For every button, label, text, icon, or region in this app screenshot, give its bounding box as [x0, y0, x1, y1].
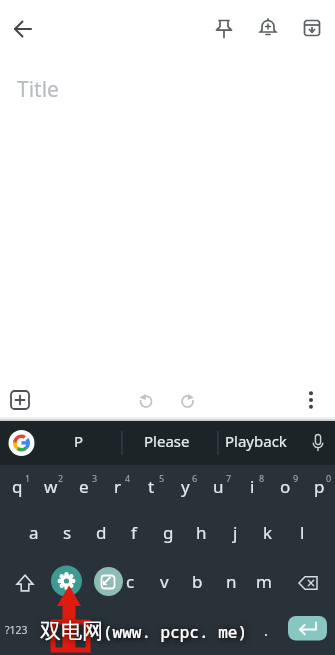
button[interactable]: k — [251, 508, 285, 556]
button[interactable]: e — [67, 462, 101, 510]
button[interactable]: 5 — [145, 471, 179, 485]
button[interactable]: 3 — [78, 471, 112, 485]
button[interactable] — [254, 14, 282, 42]
staticText: ?123 — [5, 623, 28, 637]
button[interactable]: v — [147, 557, 181, 605]
button[interactable]: 8 — [245, 471, 279, 485]
button[interactable]: Please — [132, 425, 202, 457]
staticText: 3 — [92, 472, 98, 484]
button[interactable] — [298, 14, 326, 42]
staticText: k — [263, 521, 273, 544]
button[interactable] — [50, 564, 83, 597]
staticText: 双电网(www. pcpc. me) — [40, 618, 248, 644]
staticText: 4 — [125, 472, 131, 484]
staticText: o — [280, 475, 291, 498]
staticText: Title — [17, 75, 59, 103]
staticText: l — [300, 521, 305, 544]
staticText: 0 — [326, 472, 332, 484]
staticText: Playback — [225, 431, 287, 451]
staticText: 8 — [259, 472, 265, 484]
button[interactable] — [9, 15, 37, 43]
staticText: 7 — [226, 472, 232, 484]
button[interactable]: h — [184, 508, 218, 556]
button[interactable]: 7 — [212, 471, 246, 485]
staticText: g — [163, 521, 174, 544]
staticText: f — [131, 521, 137, 544]
button[interactable]: P — [59, 425, 99, 457]
button[interactable]: j — [218, 508, 252, 556]
button[interactable]: 1 — [11, 471, 45, 485]
staticText: d — [96, 521, 107, 544]
staticText: 5 — [159, 472, 165, 484]
button[interactable]: 0 — [312, 471, 335, 485]
button[interactable]: 2 — [44, 471, 78, 485]
button[interactable]: b — [180, 557, 214, 605]
button[interactable]: m — [247, 557, 281, 605]
button[interactable]: u — [201, 462, 235, 510]
button[interactable]: l — [285, 508, 319, 556]
staticText: u — [213, 475, 224, 498]
button[interactable]: i — [235, 462, 269, 510]
button[interactable] — [210, 14, 238, 42]
button[interactable] — [2, 611, 34, 651]
staticText: w — [44, 475, 58, 498]
button[interactable]: r — [101, 462, 135, 510]
staticText: 6 — [192, 472, 198, 484]
staticText: s — [63, 521, 72, 544]
button[interactable]: 9 — [279, 471, 313, 485]
staticText: 1 — [25, 472, 31, 484]
staticText: m — [256, 570, 272, 593]
button[interactable]: . — [252, 617, 280, 643]
staticText: h — [196, 521, 207, 544]
button[interactable]: p — [302, 462, 335, 510]
button[interactable] — [132, 386, 160, 414]
button[interactable]: o — [268, 462, 302, 510]
button[interactable]: y — [168, 462, 202, 510]
staticText: e — [79, 475, 89, 498]
staticText: n — [226, 570, 237, 593]
button[interactable] — [93, 566, 124, 597]
button[interactable]: ?123 — [2, 618, 30, 642]
button[interactable] — [84, 611, 244, 651]
button[interactable]: t — [134, 462, 168, 510]
staticText: t — [148, 475, 155, 498]
button[interactable]: c — [113, 557, 147, 605]
staticText: y — [181, 475, 190, 498]
button[interactable]: n — [214, 557, 248, 605]
button[interactable]: 6 — [178, 471, 212, 485]
button[interactable]: d — [84, 508, 118, 556]
button[interactable] — [7, 428, 36, 457]
button[interactable] — [173, 386, 201, 414]
staticText: i — [250, 475, 255, 498]
staticText: c — [126, 570, 135, 593]
staticText: Please — [144, 431, 190, 451]
button[interactable]: a — [17, 508, 51, 556]
button[interactable]: s — [50, 508, 84, 556]
staticText: b — [192, 570, 203, 593]
button[interactable] — [297, 386, 325, 414]
staticText: v — [160, 570, 169, 593]
button[interactable]: g — [151, 508, 185, 556]
button[interactable] — [6, 562, 40, 604]
staticText: p — [314, 475, 325, 498]
button[interactable]: w — [34, 462, 68, 510]
staticText: 2 — [58, 472, 64, 484]
button[interactable] — [286, 613, 329, 643]
button[interactable] — [304, 428, 332, 457]
staticText: 9 — [293, 472, 299, 484]
staticText: P — [74, 431, 84, 451]
button[interactable]: 4 — [111, 471, 145, 485]
button[interactable]: q — [0, 462, 34, 510]
button[interactable]: Title — [17, 75, 137, 103]
button[interactable]: f — [117, 508, 151, 556]
staticText: j — [233, 521, 238, 544]
button[interactable]: Playback — [219, 425, 293, 457]
staticText: a — [29, 521, 39, 544]
staticText: r — [114, 475, 122, 498]
staticText: . — [264, 620, 269, 640]
button[interactable] — [291, 562, 325, 604]
button[interactable] — [6, 386, 34, 414]
staticText: q — [12, 475, 23, 498]
